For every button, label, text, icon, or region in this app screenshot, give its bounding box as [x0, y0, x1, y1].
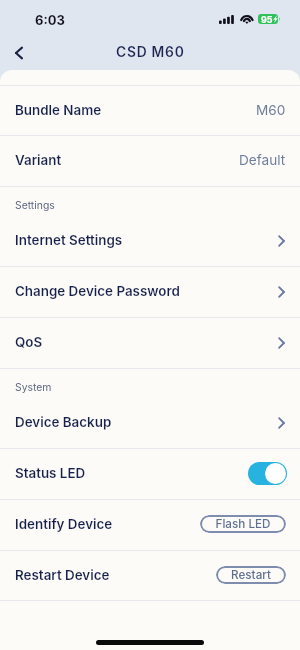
staticText: Restart — [231, 568, 271, 582]
staticText: Variant — [15, 152, 62, 168]
button[interactable]: Back — [4, 37, 34, 69]
staticText: QoS — [15, 334, 43, 350]
button[interactable]: Change Device Password — [0, 267, 300, 317]
staticText: Flash LED — [215, 517, 271, 531]
staticText: Internet Settings — [15, 232, 123, 248]
button[interactable]: QoS — [0, 318, 300, 368]
staticText: Settings — [15, 199, 55, 212]
staticText: Device Backup — [15, 414, 112, 430]
staticText: 95 — [261, 14, 273, 24]
button[interactable]: Bundle Name — [0, 86, 300, 135]
button[interactable]: Status LED toggle — [248, 462, 287, 485]
staticText: 6:03 — [35, 12, 65, 28]
staticText: Restart Device — [15, 567, 110, 583]
button[interactable]: Restart — [216, 566, 286, 584]
staticText: Bundle Name — [15, 102, 102, 118]
button[interactable]: Internet Settings — [0, 216, 300, 266]
button[interactable]: Variant — [0, 136, 300, 186]
staticText: CSD M60 — [116, 44, 185, 61]
staticText: System — [15, 381, 52, 394]
staticText: Status LED — [15, 465, 86, 481]
button[interactable]: Device Backup — [0, 398, 300, 448]
staticText: Identify Device — [15, 516, 113, 532]
button[interactable]: Flash LED — [200, 515, 286, 533]
staticText: Change Device Password — [15, 283, 180, 299]
staticText: Default — [239, 152, 286, 168]
staticText: M60 — [256, 102, 286, 118]
